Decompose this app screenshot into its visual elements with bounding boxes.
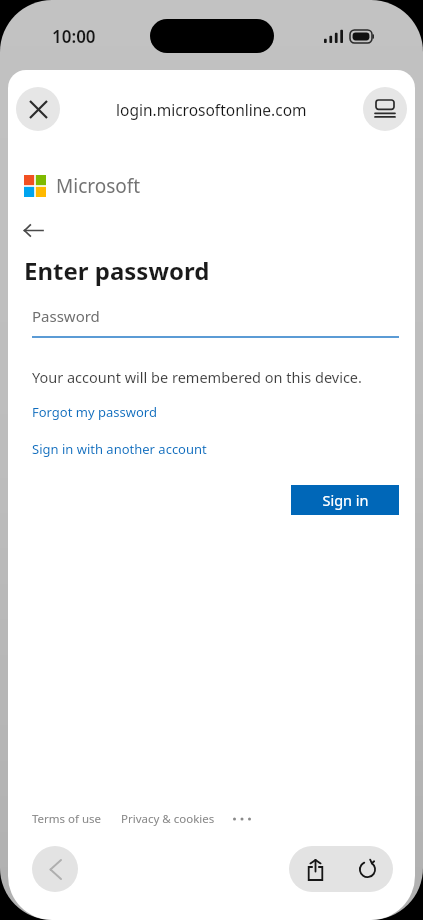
- button[interactable]: Password: [32, 306, 399, 338]
- staticText: login.microsoftonline.com: [116, 99, 307, 120]
- button[interactable]: More options: [231, 810, 253, 828]
- staticText: Enter password: [24, 254, 210, 287]
- staticText: Microsoft: [56, 173, 141, 199]
- button[interactable]: Back: [24, 217, 58, 243]
- button[interactable]: Forgot my password: [32, 403, 157, 421]
- button[interactable]: Close: [16, 87, 60, 131]
- button[interactable]: Back: [32, 846, 78, 892]
- staticText: 10:00: [52, 25, 96, 48]
- staticText: Password: [32, 306, 100, 326]
- button[interactable]: Sign in with another account: [32, 440, 207, 458]
- staticText: Your account will be remembered on this …: [32, 367, 362, 387]
- button[interactable]: Privacy & cookies: [121, 811, 215, 827]
- button[interactable]: Terms of use: [32, 811, 102, 827]
- staticText: Sign in: [322, 490, 369, 510]
- button[interactable]: Page settings: [363, 87, 407, 131]
- button[interactable]: Sign in: [291, 485, 399, 515]
- button[interactable]: Reload: [341, 846, 393, 892]
- button[interactable]: Share: [289, 846, 341, 892]
